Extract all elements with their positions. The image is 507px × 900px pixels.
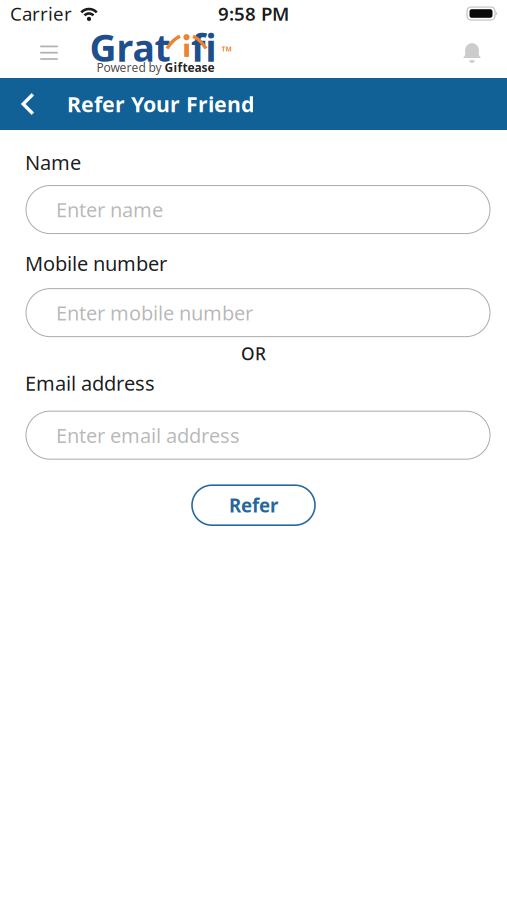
staticText: Grat bbox=[89, 22, 170, 72]
staticText: Powered by bbox=[96, 59, 161, 75]
staticText: TM bbox=[221, 44, 231, 53]
button[interactable]: Refer bbox=[192, 485, 315, 525]
button[interactable]: Enter name bbox=[26, 186, 490, 234]
staticText: Refer bbox=[229, 493, 278, 518]
staticText: Enter email address bbox=[56, 422, 240, 448]
staticText: Enter mobile number bbox=[56, 299, 253, 326]
staticText: Email address bbox=[25, 370, 155, 396]
staticText: Giftease bbox=[164, 59, 214, 75]
button[interactable]: Enter mobile number bbox=[26, 289, 490, 337]
staticText: Enter name bbox=[56, 196, 163, 223]
button[interactable] bbox=[0, 92, 35, 115]
staticText: Carrier bbox=[10, 1, 72, 26]
staticText: Refer Your Friend bbox=[67, 90, 254, 118]
button[interactable]: Enter email address bbox=[26, 411, 490, 459]
button[interactable] bbox=[32, 37, 66, 68]
staticText: OR bbox=[241, 342, 266, 365]
staticText: 9:58 PM bbox=[218, 1, 289, 26]
staticText: Name bbox=[25, 149, 81, 176]
staticText: fi bbox=[191, 22, 217, 72]
button[interactable] bbox=[454, 33, 490, 72]
staticText: Mobile number bbox=[25, 250, 167, 277]
